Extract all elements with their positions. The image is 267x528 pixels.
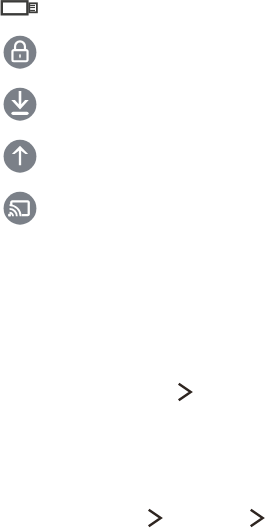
button[interactable]: Upload xyxy=(0,136,40,176)
button[interactable]: Download xyxy=(0,84,40,124)
button[interactable]: Open xyxy=(247,507,267,528)
button[interactable]: Open xyxy=(175,381,195,403)
button[interactable]: Lock xyxy=(0,32,40,72)
button[interactable]: Reader mode xyxy=(0,0,39,16)
button[interactable]: Open xyxy=(145,507,165,528)
button[interactable]: Cast xyxy=(0,188,40,228)
